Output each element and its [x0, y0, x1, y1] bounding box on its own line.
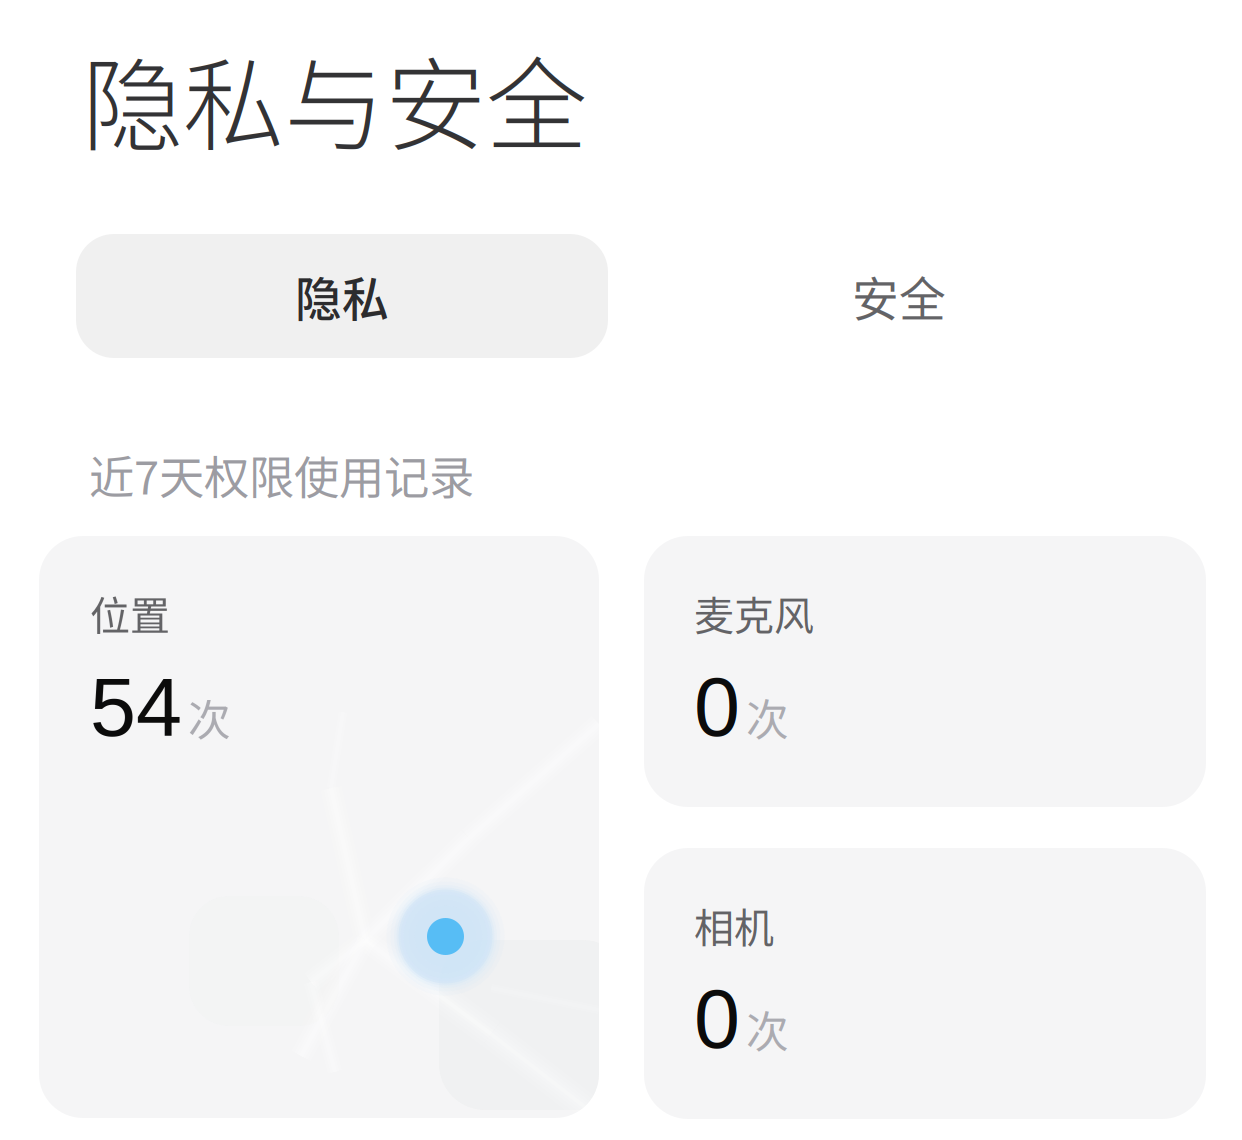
staticText: 隐私: [295, 262, 389, 330]
staticText: 次: [746, 998, 789, 1060]
staticText: 相机: [694, 896, 774, 954]
staticText: 安全: [852, 262, 946, 330]
staticText: 0: [694, 661, 740, 753]
staticText: 近7天权限使用记录: [89, 442, 474, 508]
staticText: 次: [746, 686, 789, 748]
button[interactable]: 安全: [749, 234, 1049, 358]
staticText: 麦克风: [694, 584, 814, 642]
staticText: 54: [90, 661, 182, 753]
button[interactable]: 相机: [644, 848, 1206, 1119]
staticText: 0: [694, 973, 740, 1065]
button[interactable]: 隐私: [76, 234, 608, 358]
button[interactable]: 麦克风: [644, 536, 1206, 807]
button[interactable]: 位置: [39, 536, 599, 1118]
staticText: 次: [188, 686, 231, 748]
staticText: 隐私与安全: [82, 25, 587, 172]
staticText: 位置: [90, 584, 170, 642]
